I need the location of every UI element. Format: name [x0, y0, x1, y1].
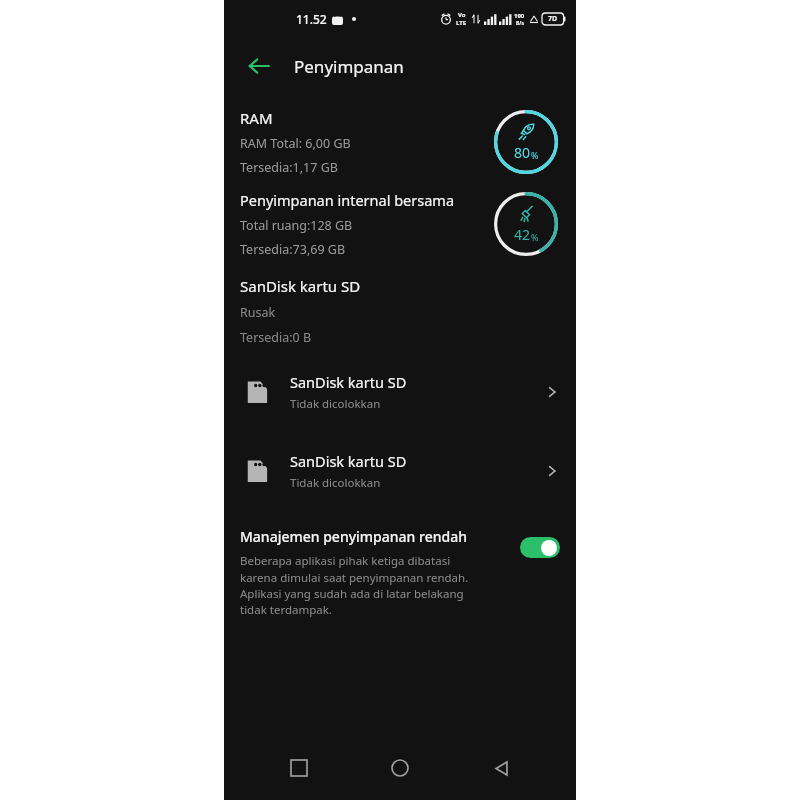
staticText: 80	[514, 143, 531, 162]
staticText: RAM Total: 6,00 GB	[240, 135, 351, 152]
staticText: Tidak dicolokkan	[290, 396, 381, 412]
staticText: RAM	[240, 108, 273, 128]
staticText: Tidak dicolokkan	[290, 475, 381, 491]
button[interactable]: SanDisk kartu SD	[224, 447, 576, 495]
button[interactable]: Boost RAM	[492, 108, 560, 176]
staticText: Tersedia:1,17 GB	[240, 159, 338, 176]
staticText: 42	[514, 225, 531, 244]
button[interactable]: Back	[238, 45, 280, 87]
staticText: 11.52	[296, 11, 327, 27]
button[interactable]: Clean storage	[492, 190, 560, 258]
button[interactable]: Manajemen penyimpanan rendah	[224, 525, 576, 617]
staticText: 190	[514, 12, 525, 20]
staticText: Total ruang:128 GB	[240, 217, 353, 234]
staticText: Penyimpanan	[294, 55, 404, 78]
staticText: %	[531, 231, 539, 243]
staticText: %	[531, 149, 539, 161]
staticText: Vo	[458, 11, 466, 19]
staticText: Tersedia:0 B	[240, 329, 312, 346]
staticText: SanDisk kartu SD	[290, 451, 407, 471]
staticText: Beberapa aplikasi pihak ketiga dibatasi …	[240, 553, 488, 617]
staticText: 7D	[548, 14, 558, 24]
button[interactable]: SanDisk kartu SD	[224, 368, 576, 416]
button[interactable]: Low storage management toggle	[520, 537, 560, 558]
button[interactable]: RAM	[224, 108, 576, 176]
button[interactable]: Penyimpanan internal bersama	[224, 190, 576, 258]
staticText: SanDisk kartu SD	[290, 372, 407, 392]
staticText: Rusak	[240, 304, 276, 321]
button[interactable]: Back	[478, 745, 524, 791]
staticText: Penyimpanan internal bersama	[240, 190, 455, 210]
staticText: B/s	[516, 20, 524, 27]
staticText: Tersedia:73,69 GB	[240, 241, 346, 258]
staticText: LTE	[456, 19, 467, 27]
staticText: Manajemen penyimpanan rendah	[240, 527, 467, 546]
button[interactable]: Home	[377, 745, 423, 791]
staticText: SanDisk kartu SD	[240, 276, 361, 296]
button[interactable]: Recents	[276, 745, 322, 791]
